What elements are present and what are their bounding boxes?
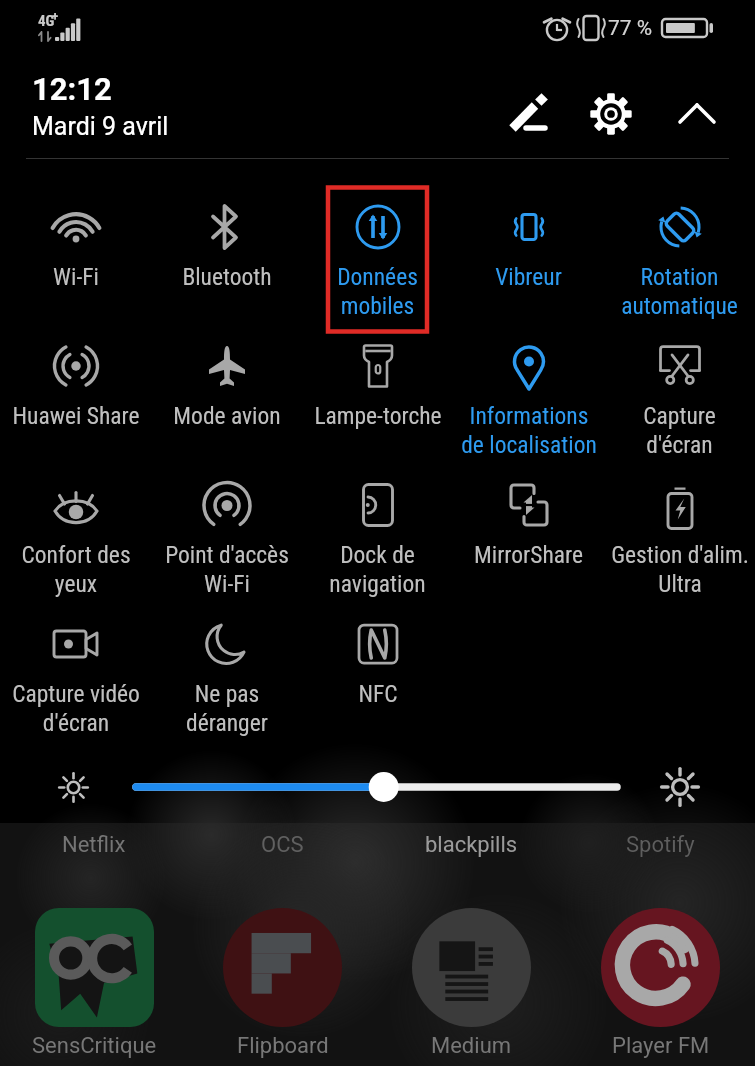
staticText: Rotation automatique (621, 263, 738, 320)
staticText: Flipboard (237, 1033, 329, 1059)
button[interactable]: Gestion d'alim. Ultra (604, 463, 755, 602)
staticText: OCS (261, 832, 304, 858)
button[interactable]: Wi-Fi (0, 185, 151, 324)
button[interactable]: Bluetooth (151, 185, 302, 324)
button[interactable]: Vibreur (453, 185, 604, 324)
button[interactable]: MirrorShare (453, 463, 604, 602)
button[interactable]: Flipboard (188, 908, 377, 1059)
staticText: Capture d'écran (643, 402, 716, 459)
button[interactable]: SensCritique (0, 908, 188, 1059)
staticText: Confort des yeux (21, 541, 131, 598)
button[interactable]: Réduire (666, 83, 727, 144)
button[interactable]: Mode avion (151, 324, 302, 463)
button[interactable]: Rotation automatique (604, 185, 755, 324)
staticText: Vibreur (495, 263, 562, 291)
staticText: Bluetooth (182, 263, 272, 291)
staticText: MirrorShare (474, 541, 583, 569)
button[interactable]: Capture d'écran (604, 324, 755, 463)
staticText: Données mobiles (337, 263, 418, 320)
staticText: Ne pas déranger (186, 680, 268, 737)
staticText: 12:12 (32, 71, 112, 107)
button[interactable]: Paramètres (580, 83, 641, 144)
button[interactable]: Player FM (566, 908, 755, 1059)
button[interactable]: NFC (302, 602, 453, 741)
staticText: Huawei Share (12, 402, 140, 430)
staticText: 4G (38, 12, 55, 30)
staticText: SensCritique (32, 1033, 157, 1059)
staticText: Spotify (626, 832, 695, 858)
staticText: Mode avion (173, 402, 281, 430)
button[interactable]: Informations de localisation (453, 324, 604, 463)
staticText: Player FM (612, 1033, 710, 1059)
button[interactable]: Données mobiles (302, 185, 453, 324)
staticText: blackpills (425, 832, 518, 858)
staticText: Wi-Fi (53, 263, 99, 291)
button[interactable]: Confort des yeux (0, 463, 151, 602)
button[interactable]: Luminosité (130, 771, 623, 803)
button[interactable]: Luminosité maximale (660, 767, 700, 807)
button[interactable]: Huawei Share (0, 324, 151, 463)
staticText: Capture vidéo d'écran (12, 680, 140, 737)
staticText: + (52, 9, 59, 24)
staticText: 77 % (608, 16, 653, 41)
staticText: Point d'accès Wi-Fi (165, 541, 289, 598)
button[interactable]: Dock de navigation (302, 463, 453, 602)
button[interactable]: Medium (377, 908, 566, 1059)
staticText: Medium (431, 1033, 512, 1059)
staticText: Netflix (62, 832, 126, 858)
staticText: Gestion d'alim. Ultra (611, 541, 749, 598)
staticText: Lampe-torche (314, 402, 442, 430)
button[interactable]: Point d'accès Wi-Fi (151, 463, 302, 602)
staticText: Informations de localisation (461, 402, 597, 459)
button[interactable]: Luminosité minimale (53, 767, 93, 807)
button[interactable]: Lampe-torche (302, 324, 453, 463)
staticText: NFC (358, 680, 398, 708)
button[interactable]: Ne pas déranger (151, 602, 302, 741)
staticText: Dock de navigation (329, 541, 426, 598)
staticText: Mardi 9 avril (32, 112, 169, 141)
button[interactable]: Modifier (498, 83, 559, 144)
button[interactable]: Capture vidéo d'écran (0, 602, 151, 741)
